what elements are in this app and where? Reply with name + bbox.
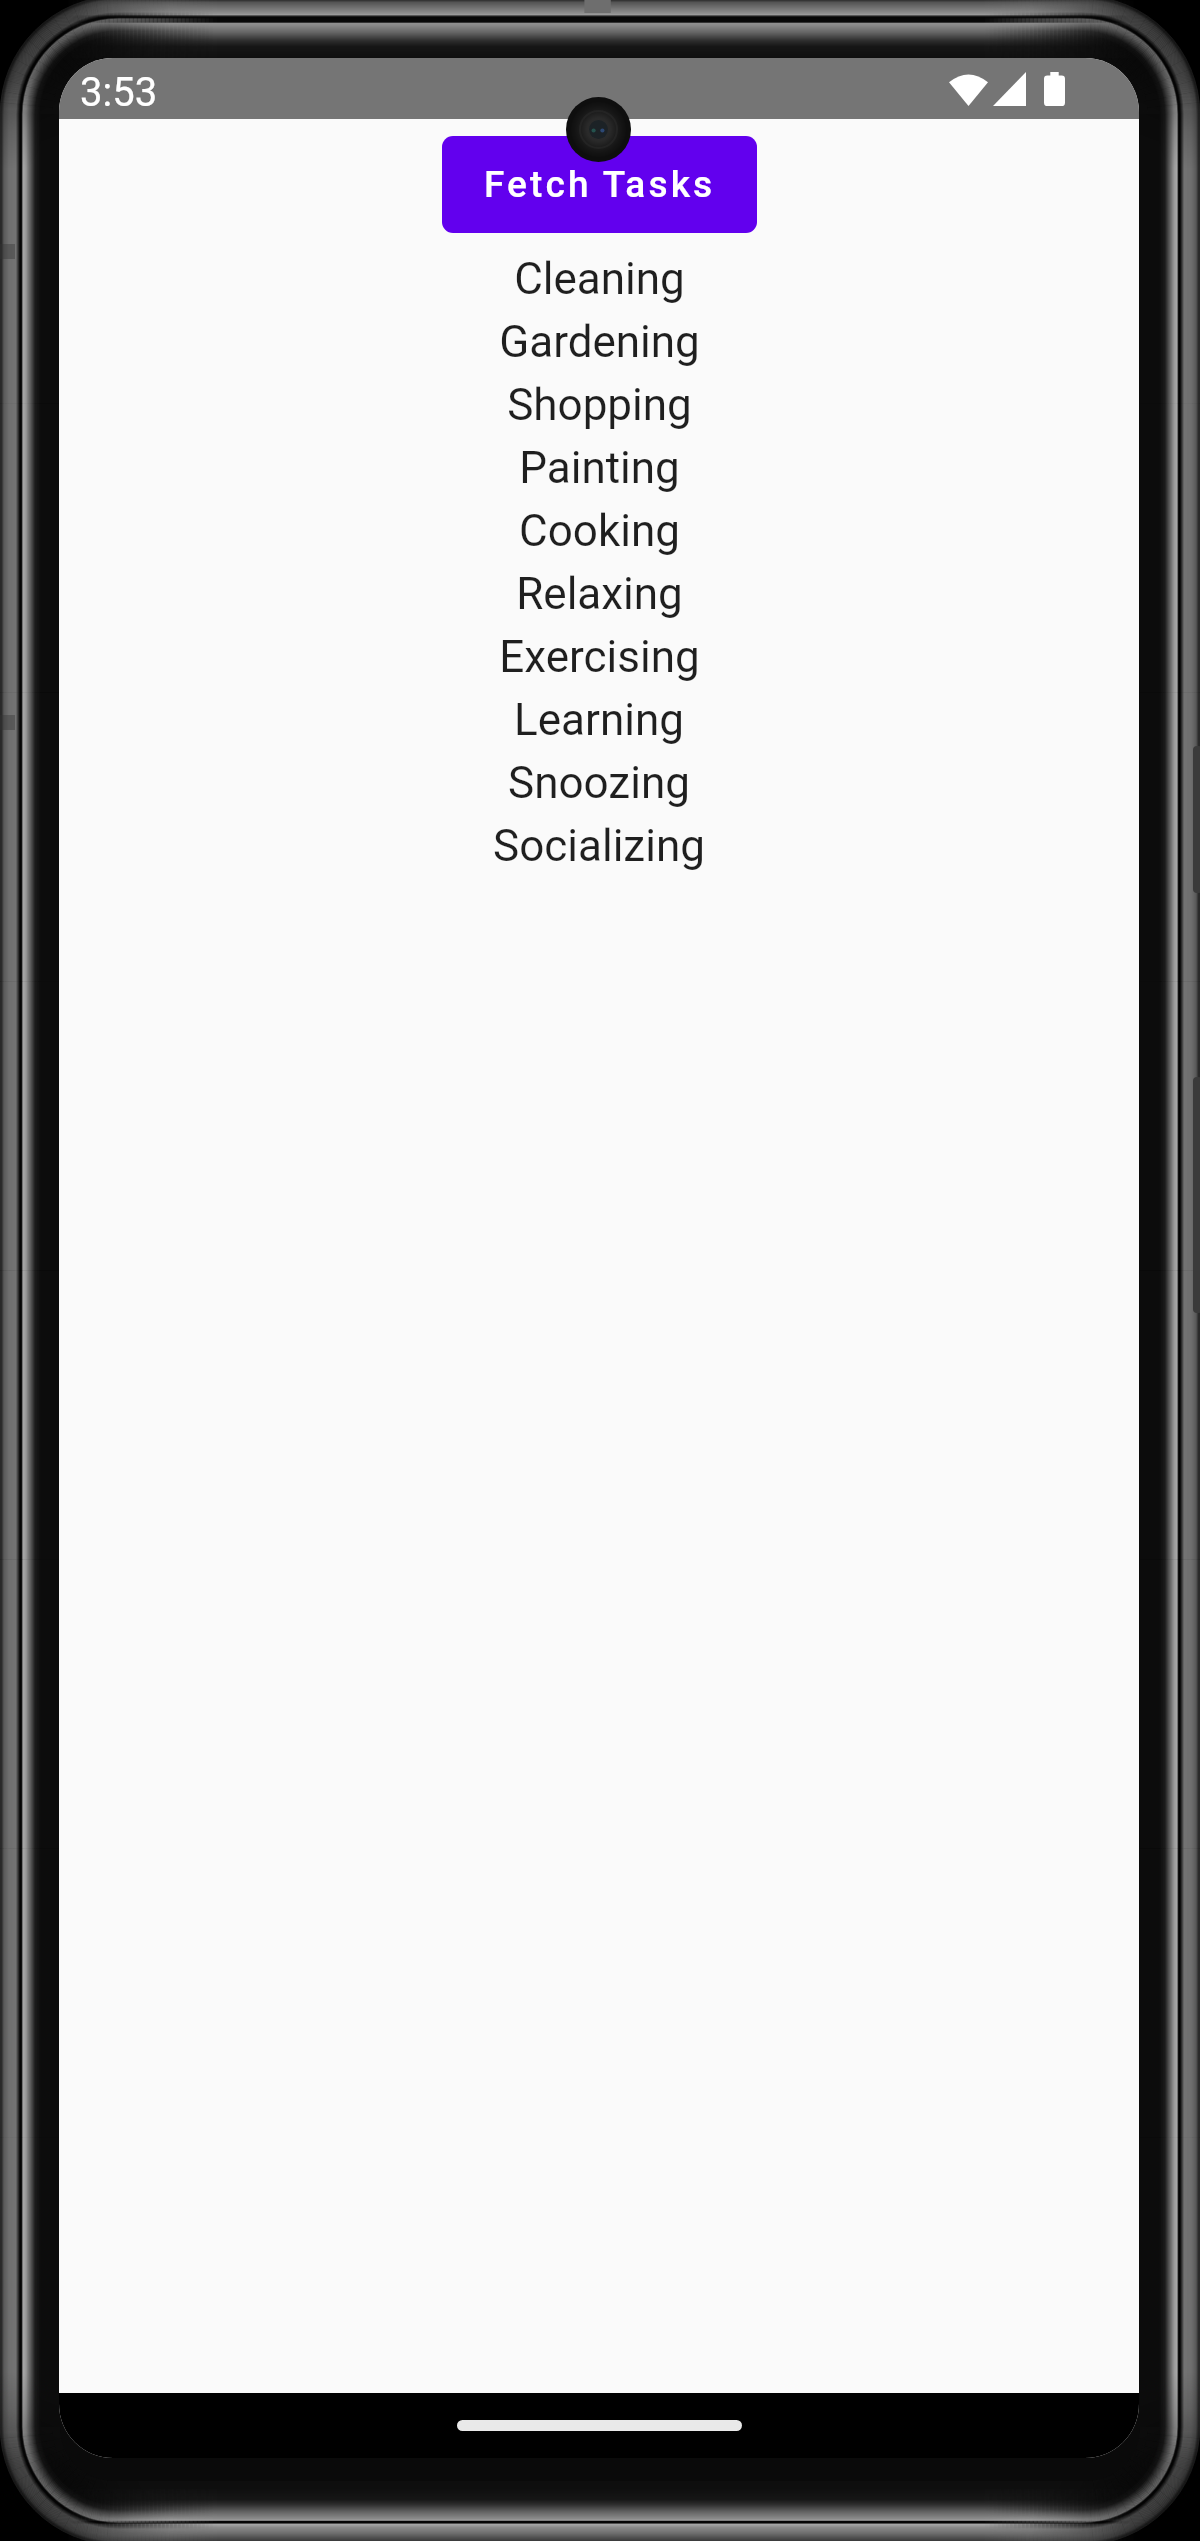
other: Mobile signal — [993, 72, 1026, 106]
staticText: Relaxing — [516, 568, 683, 620]
staticText: 3:53 — [80, 69, 158, 116]
staticText: Cooking — [519, 505, 680, 557]
other: Battery — [1044, 72, 1065, 106]
staticText: Painting — [519, 442, 680, 494]
staticText: Gardening — [499, 316, 700, 368]
staticText: Socializing — [493, 820, 705, 872]
button[interactable]: Fetch Tasks — [442, 136, 757, 233]
staticText: Learning — [514, 694, 684, 746]
staticText: Cleaning — [514, 253, 685, 305]
other: Wi-Fi — [949, 72, 988, 106]
staticText: Exercising — [499, 631, 700, 683]
staticText: Fetch Tasks — [484, 163, 716, 206]
staticText: Snoozing — [508, 757, 690, 809]
staticText: Shopping — [507, 379, 692, 431]
